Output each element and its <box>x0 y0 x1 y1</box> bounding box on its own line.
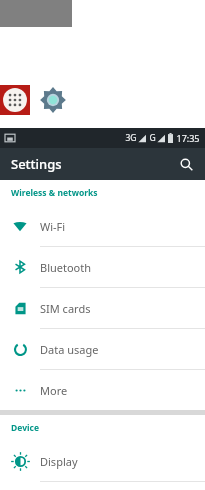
button[interactable]: Data usage <box>0 329 205 369</box>
button[interactable]: Bluetooth <box>0 247 205 287</box>
button[interactable]: Wi-Fi <box>0 206 205 246</box>
button[interactable]: Search <box>175 153 197 175</box>
staticText: 3G <box>125 132 137 144</box>
staticText: Wireless & networks <box>11 187 98 199</box>
staticText: Bluetooth <box>40 260 92 275</box>
staticText: 17:35 <box>176 132 200 144</box>
staticText: G <box>149 132 156 144</box>
button[interactable]: SIM cards <box>0 288 205 328</box>
staticText: SIM cards <box>40 301 91 316</box>
button[interactable]: All apps <box>0 85 30 115</box>
button[interactable]: Settings <box>38 85 68 115</box>
staticText: Display <box>40 454 78 469</box>
staticText: Data usage <box>40 342 99 357</box>
staticText: Wi-Fi <box>40 219 66 234</box>
staticText: More <box>40 383 68 398</box>
button[interactable]: Display <box>0 441 205 481</box>
staticText: Settings <box>11 155 62 173</box>
staticText: Device <box>11 422 39 434</box>
button[interactable]: More <box>0 370 205 410</box>
